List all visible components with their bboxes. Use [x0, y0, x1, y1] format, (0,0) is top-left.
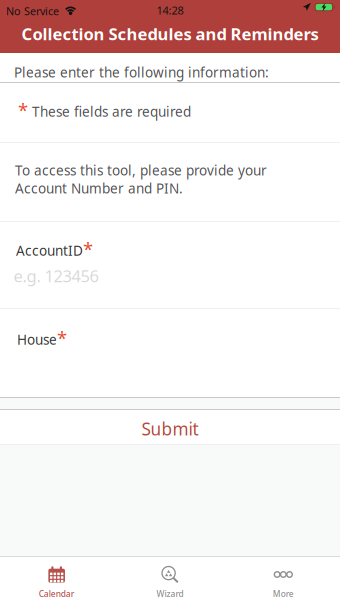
staticText: These fields are required — [28, 102, 191, 121]
button[interactable]: Submit — [0, 410, 340, 444]
staticText: Please enter the following information: — [14, 63, 269, 81]
button[interactable]: Wizard — [113, 557, 227, 604]
staticText: e.g. 123456 — [13, 264, 98, 287]
staticText: Collection Schedules and Reminders — [21, 22, 318, 45]
staticText: Account Number and PIN. — [15, 179, 183, 197]
staticText: House — [17, 330, 57, 349]
staticText: To access this tool, please provide your — [15, 161, 267, 179]
staticText: 14:28 — [156, 3, 183, 18]
staticText: No Service — [6, 4, 59, 18]
staticText: * — [57, 325, 67, 350]
staticText: * — [83, 236, 93, 261]
button[interactable]: More — [227, 557, 340, 604]
staticText: More — [273, 588, 294, 599]
staticText: Wizard — [156, 588, 183, 599]
staticText: * — [18, 97, 28, 122]
staticText: AccountID — [16, 241, 83, 260]
staticText: Submit — [141, 417, 198, 440]
staticText: Calendar — [39, 588, 75, 599]
button[interactable]: Calendar — [0, 557, 113, 604]
